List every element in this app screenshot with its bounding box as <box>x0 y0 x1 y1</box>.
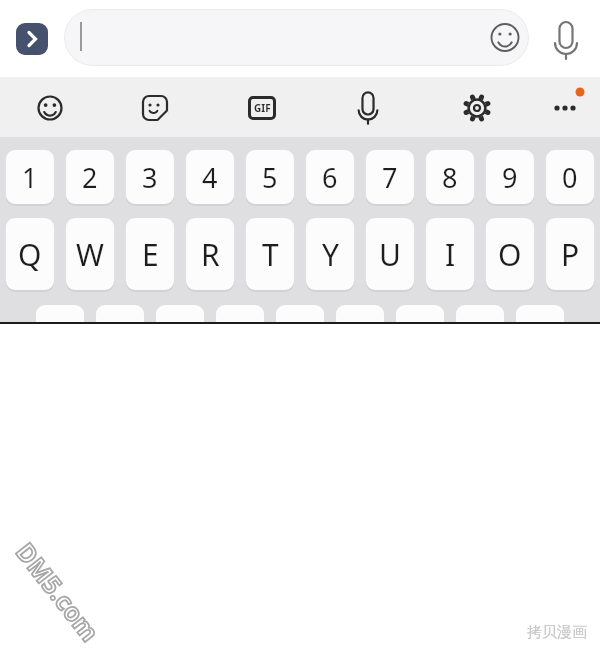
staticText: 4 <box>202 159 218 196</box>
staticText: DM5.com <box>9 535 108 648</box>
button[interactable] <box>16 23 48 55</box>
staticText: 6 <box>322 159 338 196</box>
staticText: Q <box>18 234 42 275</box>
staticText: Y <box>322 234 339 275</box>
button[interactable] <box>344 84 392 132</box>
staticText: 3 <box>142 159 158 196</box>
staticText: I <box>445 234 456 275</box>
button[interactable]: 0 <box>546 150 594 204</box>
staticText: U <box>379 234 401 275</box>
button[interactable] <box>64 9 529 66</box>
button[interactable]: 1 <box>6 150 54 204</box>
staticText: 2 <box>82 159 98 196</box>
staticText: 7 <box>382 159 398 196</box>
button[interactable]: W <box>66 218 114 290</box>
button[interactable]: Q <box>6 218 54 290</box>
button[interactable]: G <box>276 305 324 322</box>
button[interactable]: T <box>246 218 294 290</box>
button[interactable] <box>546 12 586 66</box>
button[interactable] <box>26 84 74 132</box>
button[interactable]: 4 <box>186 150 234 204</box>
staticText: 0 <box>562 159 578 196</box>
staticText: T <box>262 234 279 275</box>
button[interactable]: GIF <box>238 84 286 132</box>
staticText: 拷贝漫画 <box>527 623 587 642</box>
button[interactable]: 2 <box>66 150 114 204</box>
button[interactable]: 7 <box>366 150 414 204</box>
button[interactable] <box>541 84 589 132</box>
staticText: E <box>142 234 159 275</box>
staticText: 8 <box>442 159 458 196</box>
button[interactable]: U <box>366 218 414 290</box>
staticText: O <box>498 234 522 275</box>
staticText: P <box>561 234 580 275</box>
staticText: 1 <box>22 159 38 196</box>
button[interactable]: L <box>516 305 564 322</box>
button[interactable]: 5 <box>246 150 294 204</box>
staticText: 5 <box>262 159 278 196</box>
staticText: R <box>201 234 220 275</box>
button[interactable]: 8 <box>426 150 474 204</box>
staticText: 9 <box>502 159 518 196</box>
button[interactable]: J <box>396 305 444 322</box>
button[interactable] <box>131 84 179 132</box>
button[interactable]: A <box>36 305 84 322</box>
staticText: GIF <box>254 101 271 115</box>
button[interactable]: E <box>126 218 174 290</box>
button[interactable]: D <box>156 305 204 322</box>
button[interactable]: O <box>486 218 534 290</box>
button[interactable]: Y <box>306 218 354 290</box>
button[interactable]: 9 <box>486 150 534 204</box>
button[interactable]: 3 <box>126 150 174 204</box>
button[interactable] <box>453 84 501 132</box>
button[interactable]: I <box>426 218 474 290</box>
button[interactable]: 6 <box>306 150 354 204</box>
button[interactable]: K <box>456 305 504 322</box>
button[interactable]: P <box>546 218 594 290</box>
button[interactable]: H <box>336 305 384 322</box>
button[interactable]: S <box>96 305 144 322</box>
button[interactable]: F <box>216 305 264 322</box>
staticText: W <box>76 234 104 275</box>
button[interactable]: R <box>186 218 234 290</box>
